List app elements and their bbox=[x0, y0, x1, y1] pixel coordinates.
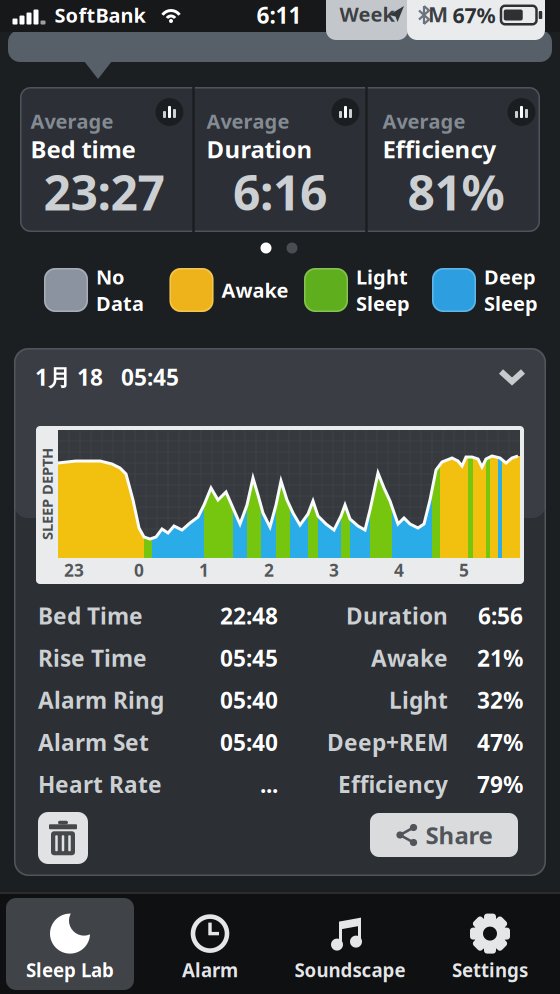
staticText: Soundscape bbox=[294, 958, 405, 982]
staticText: SLEEP DEPTH bbox=[1, 484, 93, 504]
staticText: 32% bbox=[477, 685, 523, 715]
staticText: Settings bbox=[452, 958, 528, 982]
staticText: Duration bbox=[346, 601, 448, 631]
staticText: ... bbox=[260, 769, 278, 799]
staticText: 2 bbox=[264, 558, 274, 581]
button[interactable]: Settings bbox=[420, 894, 560, 994]
staticText: Week bbox=[339, 1, 394, 27]
staticText: 81% bbox=[407, 160, 504, 224]
button[interactable]: Week bbox=[326, 0, 408, 40]
staticText: 05:45 bbox=[220, 643, 278, 673]
staticText: 6:56 bbox=[478, 601, 523, 631]
staticText: Average bbox=[206, 108, 289, 134]
staticText: Sleep bbox=[484, 290, 538, 317]
staticText: 23:27 bbox=[43, 160, 164, 224]
staticText: 1月 18 05:45 bbox=[35, 362, 179, 392]
staticText: Awake bbox=[221, 277, 288, 303]
staticText: Average bbox=[30, 108, 113, 134]
staticText: 6:11 bbox=[256, 0, 301, 30]
staticText: Rise Time bbox=[38, 643, 147, 673]
button[interactable]: M bbox=[407, 0, 545, 40]
staticText: 5 bbox=[459, 558, 469, 581]
staticText: 05:40 bbox=[220, 685, 278, 715]
staticText: Share bbox=[425, 819, 492, 851]
staticText: 1 bbox=[199, 558, 209, 581]
staticText: Deep+REM bbox=[327, 727, 448, 757]
staticText: Duration bbox=[206, 133, 312, 165]
button[interactable]: Alarm bbox=[140, 894, 280, 994]
staticText: Data bbox=[96, 290, 144, 317]
button[interactable]: Soundscape bbox=[280, 894, 420, 994]
staticText: No bbox=[96, 263, 125, 290]
staticText: Alarm Set bbox=[38, 727, 149, 757]
staticText: Average bbox=[382, 108, 465, 134]
staticText: Alarm bbox=[182, 958, 238, 982]
staticText: Efficiency bbox=[382, 133, 496, 165]
button[interactable]: Delete bbox=[38, 812, 88, 864]
staticText: Light bbox=[389, 685, 448, 715]
staticText: 0 bbox=[134, 558, 144, 581]
staticText: 79% bbox=[477, 769, 523, 799]
staticText: Alarm Ring bbox=[38, 685, 164, 715]
button[interactable]: 1月 18 05:45 bbox=[35, 354, 525, 400]
staticText: 22:48 bbox=[220, 601, 278, 631]
staticText: 67% bbox=[452, 1, 495, 29]
staticText: SoftBank bbox=[54, 2, 145, 28]
button[interactable]: Chart bbox=[331, 98, 359, 126]
staticText: Efficiency bbox=[338, 769, 448, 799]
staticText: 23 bbox=[64, 558, 84, 581]
staticText: Heart Rate bbox=[38, 769, 162, 799]
button[interactable]: Chart bbox=[507, 98, 535, 126]
button[interactable]: Sleep Lab bbox=[0, 894, 140, 994]
staticText: Bed time bbox=[30, 133, 135, 165]
staticText: M bbox=[428, 0, 448, 28]
staticText: Deep bbox=[484, 263, 536, 290]
staticText: 6:16 bbox=[233, 160, 327, 224]
staticText: 05:40 bbox=[220, 727, 278, 757]
staticText: 21% bbox=[477, 643, 523, 673]
staticText: Sleep Lab bbox=[26, 958, 114, 982]
staticText: 3 bbox=[329, 558, 339, 581]
staticText: Bed Time bbox=[38, 601, 143, 631]
staticText: Light bbox=[356, 263, 408, 290]
staticText: 47% bbox=[477, 727, 523, 757]
staticText: Awake bbox=[371, 643, 448, 673]
button[interactable]: Chart bbox=[155, 98, 183, 126]
staticText: 4 bbox=[394, 558, 404, 581]
staticText: Sleep bbox=[356, 290, 410, 317]
button[interactable]: Share bbox=[370, 813, 518, 857]
